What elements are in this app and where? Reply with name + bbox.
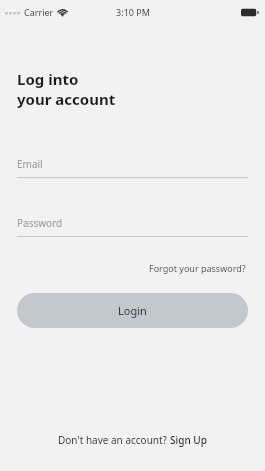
staticText: Forgot your password?	[149, 262, 246, 274]
button[interactable]: Email	[17, 157, 248, 178]
staticText: Log into	[17, 69, 79, 89]
button[interactable]: Don't have an account?	[0, 427, 265, 453]
staticText: your account	[17, 89, 116, 109]
staticText: Carrier	[24, 6, 54, 18]
staticText: Email	[17, 157, 43, 171]
button[interactable]: Login	[17, 293, 248, 328]
staticText: Don't have an account?	[58, 433, 170, 447]
staticText: Sign Up	[170, 433, 207, 447]
staticText: 3:10 PM	[116, 6, 150, 18]
button[interactable]: Password	[17, 216, 248, 237]
button[interactable]: Forgot your password?	[147, 259, 248, 277]
staticText: Login	[118, 303, 147, 318]
staticText: Password	[17, 216, 63, 230]
